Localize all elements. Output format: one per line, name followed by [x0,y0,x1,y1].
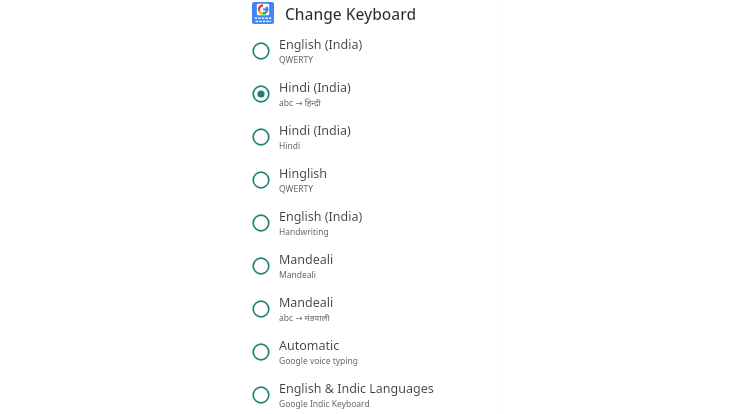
staticText: Mandeali [279,269,316,280]
staticText: English (India) [279,208,363,225]
staticText: English (India) [279,36,363,53]
button[interactable]: Mandeali [252,294,738,323]
button[interactable]: Hindi (India) [252,79,738,108]
button[interactable]: English (India) [252,208,738,237]
button[interactable]: English (India) [252,36,738,65]
button[interactable]: Mandeali [252,251,738,280]
staticText: QWERTY [279,183,314,194]
button[interactable]: Hinglish [252,165,738,194]
staticText: Change Keyboard [285,3,417,24]
staticText: Google voice typing [279,355,358,366]
staticText: abc → मंडयाली [279,312,330,323]
staticText: Handwriting [279,226,329,237]
staticText: abc → हिन्दी [279,97,321,108]
staticText: Hindi (India) [279,79,351,96]
staticText: Mandeali [279,294,334,311]
staticText: English & Indic Languages [279,380,434,397]
other: Google Indic Keyboard [252,2,274,24]
button[interactable]: English & Indic Languages [252,380,738,409]
staticText: Automatic [279,337,340,354]
staticText: Hinglish [279,165,328,182]
staticText: Hindi (India) [279,122,351,139]
staticText: Google Indic Keyboard [279,398,370,409]
staticText: Hindi [279,140,301,151]
staticText: Mandeali [279,251,334,268]
staticText: QWERTY [279,54,314,65]
button[interactable]: Hindi (India) [252,122,738,151]
button[interactable]: Automatic [252,337,738,366]
